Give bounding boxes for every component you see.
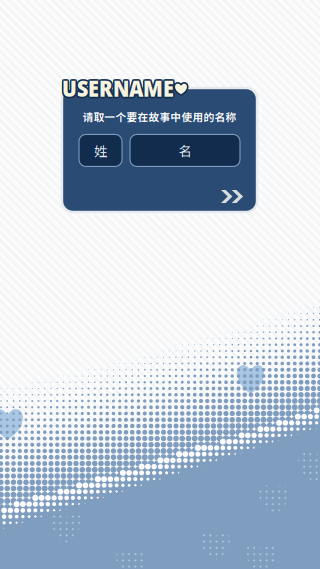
staticText: USERNAME xyxy=(61,73,173,105)
staticText: 请取一个要在故事中使用的名称 xyxy=(82,109,236,124)
staticText: USERNAME xyxy=(62,70,174,102)
staticText: 名 xyxy=(178,141,191,160)
staticText: 姓 xyxy=(94,141,107,160)
staticText: USERNAME xyxy=(60,72,172,104)
staticText: USERNAME xyxy=(63,71,175,102)
staticText: USERNAME xyxy=(61,71,173,102)
staticText: USERNAME xyxy=(62,74,174,105)
button[interactable]: 名 xyxy=(130,134,240,166)
button[interactable]: Continue xyxy=(216,185,249,208)
staticText: USERNAME xyxy=(62,72,174,104)
staticText: USERNAME xyxy=(64,72,176,104)
button[interactable]: 姓 xyxy=(79,134,122,166)
staticText: USERNAME xyxy=(63,73,175,105)
